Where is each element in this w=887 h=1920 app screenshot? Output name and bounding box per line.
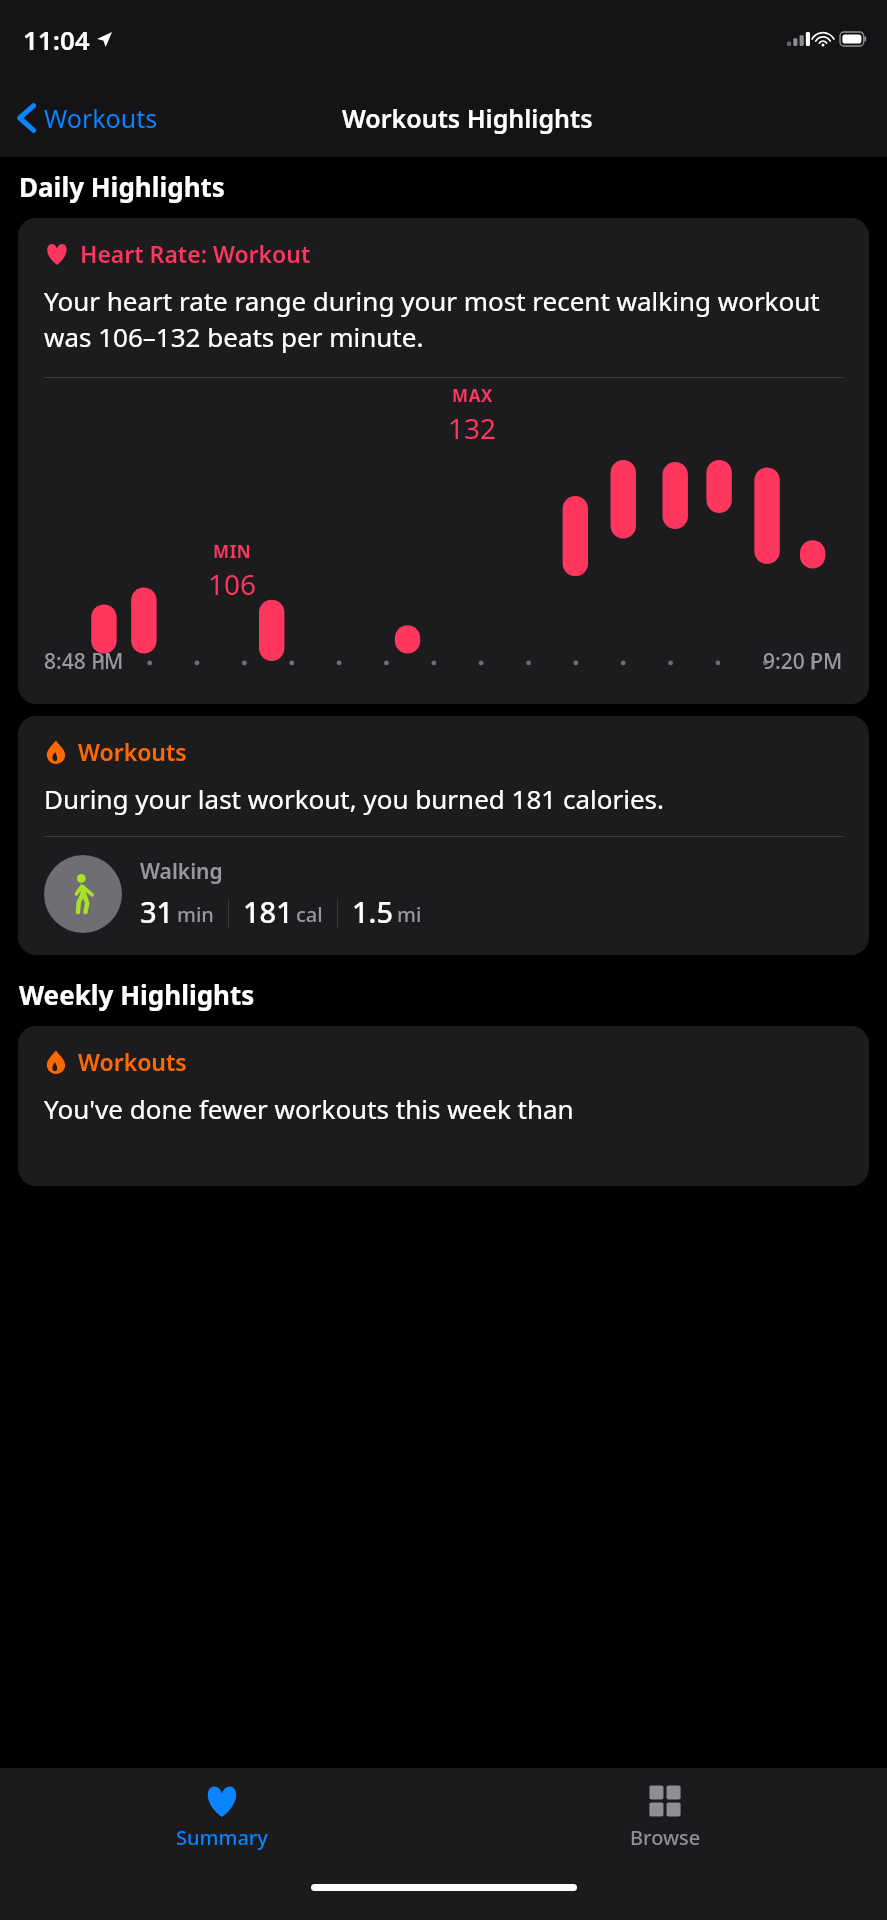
- staticText: Workouts: [44, 101, 158, 135]
- staticText: Workouts: [78, 736, 187, 767]
- staticText: 11:04: [23, 22, 90, 57]
- button[interactable]: Workouts: [18, 1026, 869, 1186]
- staticText: MAX: [452, 384, 493, 407]
- staticText: Browse: [630, 1824, 701, 1851]
- button[interactable]: Summary: [0, 1768, 443, 1872]
- button[interactable]: Heart Rate: Workout: [18, 218, 869, 704]
- button[interactable]: Workouts: [0, 93, 168, 143]
- staticText: You've done fewer workouts this week tha…: [44, 1091, 574, 1126]
- staticText: Heart Rate: Workout: [80, 238, 311, 269]
- staticText: 181: [243, 892, 293, 931]
- staticText: Walking: [140, 857, 223, 886]
- staticText: mi: [397, 901, 422, 928]
- staticText: min: [177, 901, 214, 928]
- staticText: 1.5: [352, 892, 394, 931]
- staticText: 9:20 PM: [763, 647, 843, 676]
- staticText: During your last workout, you burned 181…: [44, 781, 664, 816]
- button[interactable]: Browse: [443, 1768, 887, 1872]
- staticText: Daily Highlights: [19, 169, 225, 204]
- staticText: MIN: [213, 540, 252, 563]
- staticText: Your heart rate range during your most r…: [44, 283, 843, 355]
- staticText: Workouts Highlights: [342, 101, 593, 135]
- staticText: cal: [296, 901, 323, 928]
- staticText: 8:48 PM: [44, 647, 124, 676]
- staticText: 106: [208, 565, 257, 603]
- staticText: Weekly Highlights: [19, 977, 255, 1012]
- button[interactable]: Workouts: [18, 716, 869, 955]
- staticText: 31: [140, 892, 174, 931]
- staticText: Workouts: [78, 1046, 187, 1077]
- staticText: 132: [448, 409, 497, 447]
- staticText: Summary: [176, 1824, 268, 1851]
